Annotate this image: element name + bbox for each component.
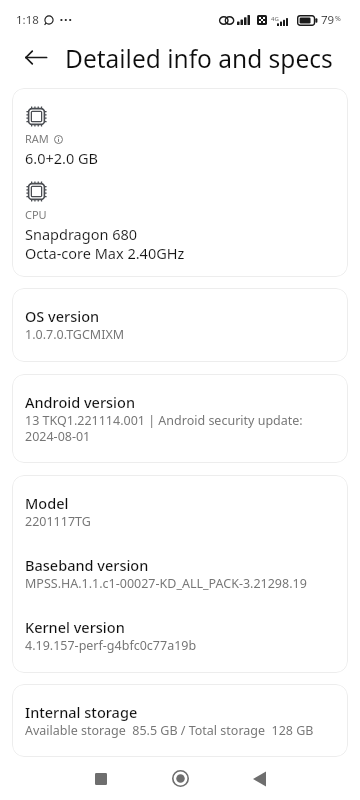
staticText: RAM (25, 133, 49, 146)
staticText: 2201117TG (25, 513, 91, 529)
staticText: 6.0+2.0 GB (25, 149, 98, 168)
staticText: 4.19.157-perf-g4bfc0c77a19b (25, 637, 197, 653)
button[interactable]: Home (156, 757, 204, 800)
staticText: 4G (271, 15, 279, 23)
staticText: Octa-core Max 2.40GHz (25, 244, 185, 263)
button[interactable]: Internal storage (12, 684, 348, 757)
staticText: Snapdragon 680 (25, 225, 138, 244)
staticText: Internal storage (25, 703, 138, 722)
staticText: Kernel version (25, 618, 125, 637)
button[interactable]: Back (18, 39, 54, 75)
staticText: 79 (321, 12, 335, 28)
staticText: 1:18 (16, 12, 39, 28)
staticText: Model (25, 494, 69, 513)
staticText: Available storage 85.5 GB / Total storag… (25, 722, 314, 738)
button[interactable]: Back (235, 757, 283, 800)
staticText: MPSS.HA.1.1.c1-00027-KD_ALL_PACK-3.21298… (25, 575, 307, 591)
staticText: CPU (25, 209, 47, 222)
staticText: Detailed info and specs (65, 42, 333, 75)
button[interactable]: RAM (12, 88, 348, 277)
staticText: 1.0.7.0.TGCMIXM (25, 326, 125, 342)
staticText: Baseband version (25, 556, 149, 575)
staticText: % (335, 14, 341, 24)
staticText: OS version (25, 307, 100, 326)
staticText: 13 TKQ1.221114.001 | Android security up… (25, 412, 303, 444)
staticText: Android version (25, 393, 135, 412)
button[interactable]: OS version (12, 288, 348, 362)
button[interactable]: Recent apps (77, 757, 125, 800)
button[interactable]: Model (12, 475, 348, 673)
button[interactable]: Android version (12, 374, 348, 463)
